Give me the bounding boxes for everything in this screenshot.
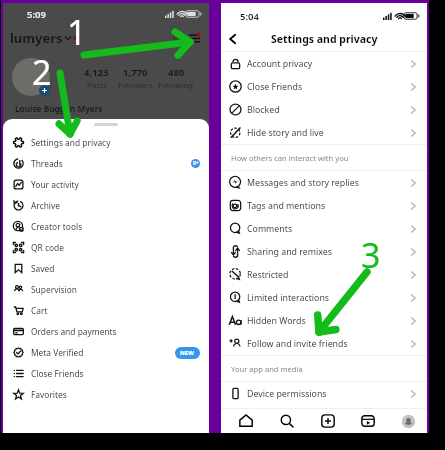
button[interactable]: Messages and story replies — [221, 171, 427, 194]
staticText: Follow and invite friends — [247, 338, 348, 350]
staticText: Limited interactions — [247, 292, 330, 304]
button[interactable]: Reels — [357, 410, 379, 432]
staticText: Your activity — [31, 179, 79, 190]
staticText: lumyers — [10, 29, 63, 47]
button[interactable]: Meta Verified — [3, 342, 209, 363]
button[interactable]: QR code — [3, 237, 209, 258]
button[interactable]: Profile — [398, 411, 418, 431]
button[interactable]: Close Friends — [3, 363, 209, 384]
staticText: Following — [158, 80, 194, 91]
staticText: Creator tools — [31, 221, 83, 232]
staticText: Blocked — [247, 104, 280, 116]
staticText: How others can interact with you — [231, 153, 349, 163]
button[interactable]: Restricted — [221, 263, 427, 286]
button[interactable]: Favorites — [3, 384, 209, 405]
staticText: Hidden Words — [247, 315, 306, 327]
staticText: 1,770 — [123, 66, 148, 79]
button[interactable]: Limited interactions — [221, 286, 427, 309]
button[interactable]: Search — [276, 410, 298, 432]
button[interactable]: Cart — [3, 300, 209, 321]
button[interactable]: Comments — [221, 217, 427, 240]
button[interactable]: Hide story and live — [221, 121, 427, 144]
button[interactable]: Tags and mentions — [221, 194, 427, 217]
staticText: Creator — [15, 114, 44, 125]
button[interactable]: Threads — [171, 31, 185, 45]
staticText: Threads — [31, 158, 63, 169]
staticText: 5:09 — [27, 8, 46, 21]
button[interactable]: Creator tools — [3, 216, 209, 237]
staticText: Comments — [247, 223, 293, 235]
button[interactable]: Saved — [3, 258, 209, 279]
staticText: Orders and payments — [31, 326, 117, 337]
staticText: 9+ — [193, 160, 199, 167]
button[interactable]: Device permissions — [221, 382, 427, 405]
staticText: 5:04 — [240, 10, 259, 23]
button[interactable]: Settings and privacy — [3, 132, 209, 153]
staticText: Supervision — [31, 284, 78, 295]
staticText: 480 — [168, 66, 185, 79]
button[interactable]: Orders and payments — [3, 321, 209, 342]
button[interactable]: Close Friends — [221, 75, 427, 98]
staticText: Meta Verified — [31, 347, 84, 358]
button[interactable]: Sharing and remixes — [221, 240, 427, 263]
button[interactable]: Home — [235, 410, 257, 432]
staticText: Settings and privacy — [271, 32, 378, 46]
staticText: 1 — [67, 9, 87, 55]
staticText: Saved — [31, 263, 55, 274]
staticText: Hide story and live — [247, 127, 324, 139]
staticText: Close Friends — [247, 81, 303, 93]
staticText: Account privacy — [247, 58, 313, 70]
staticText: Restricted — [247, 269, 289, 281]
staticText: Favorites — [31, 389, 67, 400]
staticText: Posts — [87, 80, 107, 91]
staticText: Your app and media — [231, 364, 303, 374]
staticText: Cart — [31, 305, 48, 316]
button[interactable]: Threads — [3, 153, 209, 174]
staticText: Sharing and remixes — [247, 246, 332, 258]
button[interactable]: Account privacy — [221, 52, 427, 75]
staticText: Device permissions — [247, 388, 327, 400]
staticText: 3 — [361, 232, 381, 278]
button[interactable]: Supervision — [3, 279, 209, 300]
button[interactable]: Blocked — [221, 98, 427, 121]
staticText: Settings and privacy — [31, 137, 111, 148]
button[interactable]: Back — [224, 30, 242, 48]
button[interactable]: Menu — [187, 31, 201, 45]
button[interactable]: Create — [317, 410, 339, 432]
staticText: NEW — [180, 349, 195, 357]
staticText: Close Friends — [31, 368, 84, 379]
staticText: 4,123 — [84, 66, 109, 79]
staticText: Messages and story replies — [247, 177, 359, 189]
staticText: 2 — [32, 49, 52, 95]
button[interactable]: Archive — [3, 195, 209, 216]
button[interactable]: Follow and invite friends — [221, 332, 427, 355]
staticText: Archive — [31, 200, 61, 211]
staticText: Followers — [118, 80, 153, 91]
button[interactable]: Your activity — [3, 174, 209, 195]
staticText: QR code — [31, 242, 64, 253]
staticText: Louise Bugglin Myers — [15, 103, 103, 114]
staticText: Tags and mentions — [247, 200, 326, 212]
button[interactable]: Hidden Words — [221, 309, 427, 332]
